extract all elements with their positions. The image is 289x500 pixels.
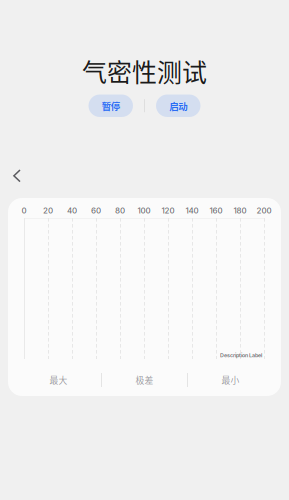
staticText: 40: [67, 206, 77, 215]
staticText: 启动: [169, 99, 187, 113]
staticText: 80: [115, 206, 125, 215]
staticText: 60: [91, 206, 101, 215]
staticText: Description Label: [220, 352, 262, 358]
staticText: 最大: [49, 374, 67, 386]
button[interactable]: 启动: [156, 94, 200, 117]
staticText: 100: [137, 206, 150, 215]
staticText: 140: [185, 206, 198, 215]
staticText: 120: [161, 206, 174, 215]
staticText: 0: [21, 206, 26, 215]
button[interactable]: 暂停: [88, 94, 133, 117]
staticText: 暂停: [102, 99, 120, 113]
staticText: 180: [233, 206, 246, 215]
staticText: 最小: [221, 374, 239, 386]
staticText: 20: [43, 206, 53, 215]
staticText: 160: [209, 206, 222, 215]
button[interactable]: Back: [2, 161, 32, 191]
staticText: 极差: [135, 374, 153, 386]
staticText: 200: [256, 206, 271, 215]
staticText: 气密性测试: [82, 53, 207, 89]
